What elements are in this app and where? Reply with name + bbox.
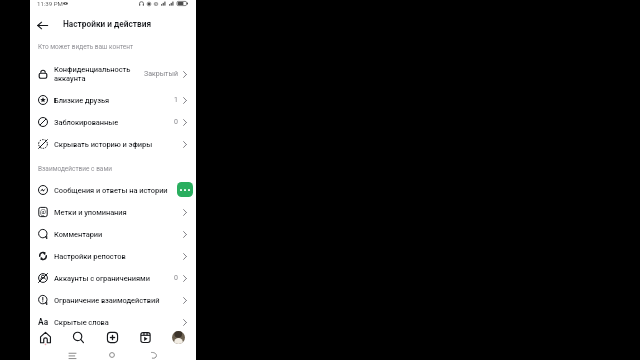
button[interactable]: Поиск <box>71 330 86 345</box>
button[interactable]: Конфиденциальность <box>30 61 196 87</box>
button[interactable]: Недавние приложения <box>67 350 77 360</box>
button[interactable]: Скрывать историю и эфиры <box>30 133 196 155</box>
staticText: Взаимодействие с вами <box>38 165 112 173</box>
staticText: 0 <box>174 274 178 282</box>
button[interactable]: Близкие друзья <box>30 89 196 111</box>
staticText: Aa <box>38 317 49 327</box>
button[interactable]: Комментарии <box>30 223 196 245</box>
button[interactable]: Аккаунты с ограничениями <box>30 267 196 289</box>
button[interactable]: Создать <box>105 330 120 345</box>
staticText: Конфиденциальность <box>54 65 131 74</box>
staticText: Закрытый <box>144 70 178 78</box>
button[interactable]: Назад <box>149 350 159 360</box>
staticText: 11:39 PM <box>37 0 63 7</box>
staticText: Близкие друзья <box>54 96 174 105</box>
button[interactable]: Ограничение взаимодействий <box>30 289 196 311</box>
staticText: Настройки репостов <box>54 252 183 261</box>
staticText: Скрывать историю и эфиры <box>54 140 183 149</box>
button[interactable]: Профиль <box>172 331 185 344</box>
button[interactable]: @ <box>30 201 196 223</box>
button[interactable]: Главный экран <box>107 350 117 360</box>
button[interactable]: Aa <box>30 311 196 333</box>
staticText: Аккаунты с ограничениями <box>54 274 174 283</box>
staticText: аккаунта <box>54 74 86 83</box>
button[interactable]: Настройки репостов <box>30 245 196 267</box>
staticText: Метки и упоминания <box>54 208 183 217</box>
staticText: Кто может видеть ваш контент <box>38 43 134 51</box>
staticText: Ограничение взаимодействий <box>54 296 183 305</box>
staticText: @ <box>40 208 46 216</box>
staticText: 1 <box>174 96 178 104</box>
staticText: Комментарии <box>54 230 183 239</box>
staticText: Скрытые слова <box>54 318 183 327</box>
staticText: Настройки и действия <box>63 19 152 29</box>
button[interactable]: Видео <box>138 330 153 345</box>
button[interactable]: Назад <box>34 17 51 34</box>
staticText: Сообщения и ответы на истории <box>54 186 171 195</box>
staticText: Заблокированные <box>54 118 174 127</box>
staticText: 0 <box>174 118 178 126</box>
button[interactable]: Заблокированные <box>30 111 196 133</box>
button[interactable]: Главная <box>38 330 53 345</box>
button[interactable]: Сообщения и ответы на истории <box>30 179 196 201</box>
